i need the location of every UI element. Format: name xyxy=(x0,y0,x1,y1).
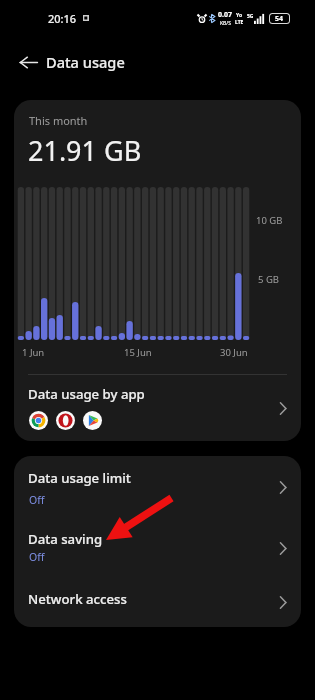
staticText: 1 Jun xyxy=(22,346,45,359)
button[interactable]: Network access xyxy=(14,577,301,627)
staticText: 10 GB xyxy=(256,214,283,227)
button[interactable]: Data saving xyxy=(14,519,301,577)
button[interactable]: Data usage limit xyxy=(14,456,301,519)
staticText: 5 GB xyxy=(258,273,279,286)
staticText: Off xyxy=(29,493,45,507)
staticText: This month xyxy=(29,113,88,128)
staticText: Yo xyxy=(236,12,243,19)
staticText: Data usage xyxy=(46,52,125,72)
staticText: LTE xyxy=(235,19,244,26)
staticText: Data usage limit xyxy=(28,469,131,487)
button[interactable]: Back xyxy=(8,42,48,82)
staticText: 5G xyxy=(247,13,254,20)
staticText: 15 Jun xyxy=(124,346,152,359)
staticText: 54 xyxy=(275,14,284,23)
staticText: Network access xyxy=(28,590,127,608)
staticText: 21.91 GB xyxy=(28,132,142,169)
staticText: Data saving xyxy=(28,530,103,548)
staticText: 20:16 xyxy=(48,11,77,26)
staticText: Data usage by app xyxy=(28,385,145,403)
staticText: 0.07 xyxy=(218,10,232,20)
staticText: 30 Jun xyxy=(220,346,248,359)
staticText: KB/S xyxy=(220,20,231,27)
staticText: Off xyxy=(29,550,45,564)
button[interactable]: Data usage by app xyxy=(14,375,301,441)
